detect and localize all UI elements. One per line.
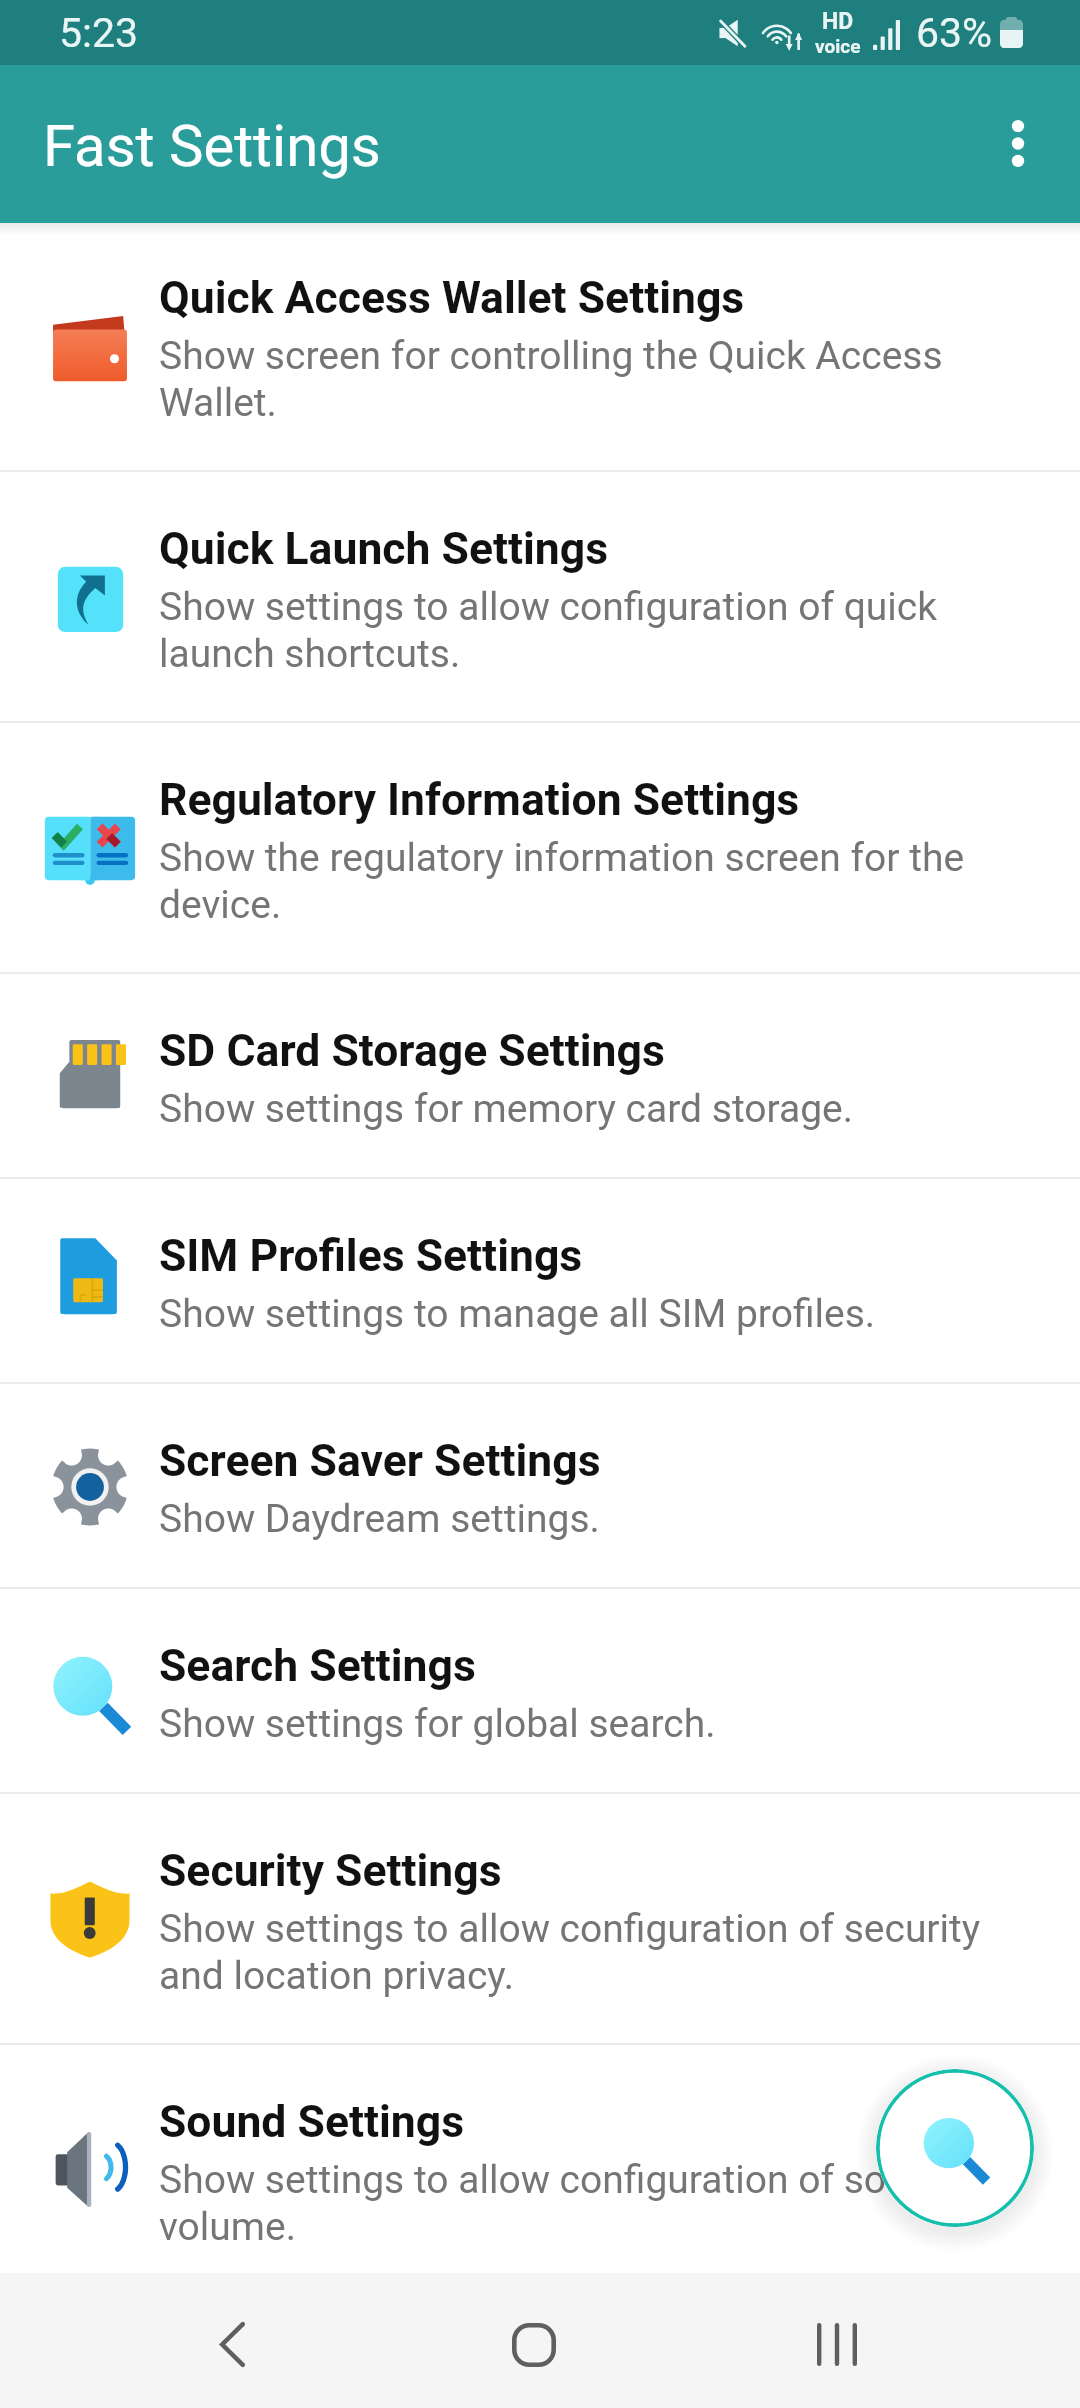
- button[interactable]: Sound Settings: [0, 2045, 1080, 2273]
- staticText: Show settings to allow configuration of …: [159, 2157, 1040, 2249]
- staticText: voice: [815, 35, 861, 57]
- button[interactable]: Home: [454, 2277, 614, 2408]
- staticText: Quick Access Wallet Settings: [159, 272, 745, 324]
- staticText: 63%: [916, 9, 993, 57]
- button[interactable]: Quick Access Wallet Settings: [0, 235, 1080, 472]
- button[interactable]: Quick Launch Settings: [0, 472, 1080, 723]
- staticText: Fast Settings: [43, 112, 381, 180]
- staticText: Show settings to allow configuration of …: [159, 584, 1040, 676]
- button[interactable]: More options: [970, 96, 1066, 192]
- button[interactable]: Security Settings: [0, 1794, 1080, 2045]
- button[interactable]: Recent apps: [757, 2277, 917, 2408]
- staticText: Screen Saver Settings: [159, 1435, 601, 1487]
- staticText: Quick Launch Settings: [159, 523, 609, 575]
- button[interactable]: Search: [876, 2069, 1034, 2227]
- button[interactable]: Regulatory Information Settings: [0, 723, 1080, 974]
- staticText: Security Settings: [159, 1845, 502, 1897]
- button[interactable]: SIM Profiles Settings: [0, 1179, 1080, 1384]
- button[interactable]: Search Settings: [0, 1589, 1080, 1794]
- staticText: HD: [822, 8, 854, 35]
- staticText: Regulatory Information Settings: [159, 774, 800, 826]
- staticText: SD Card Storage Settings: [159, 1025, 665, 1077]
- button[interactable]: Screen Saver Settings: [0, 1384, 1080, 1589]
- staticText: Show settings for memory card storage.: [159, 1086, 854, 1132]
- staticText: Search Settings: [159, 1640, 476, 1692]
- staticText: Show settings for global search.: [159, 1701, 716, 1747]
- staticText: 5:23: [59, 9, 139, 57]
- button[interactable]: SD Card Storage Settings: [0, 974, 1080, 1179]
- staticText: Show screen for controlling the Quick Ac…: [159, 333, 1040, 425]
- staticText: Show Daydream settings.: [159, 1496, 600, 1542]
- staticText: Show settings to allow configuration of …: [159, 1906, 1040, 1998]
- staticText: Show settings to manage all SIM profiles…: [159, 1291, 876, 1337]
- button[interactable]: Back: [152, 2277, 312, 2408]
- staticText: Sound Settings: [159, 2096, 465, 2148]
- staticText: SIM Profiles Settings: [159, 1230, 583, 1282]
- staticText: Show the regulatory information screen f…: [159, 835, 1040, 927]
